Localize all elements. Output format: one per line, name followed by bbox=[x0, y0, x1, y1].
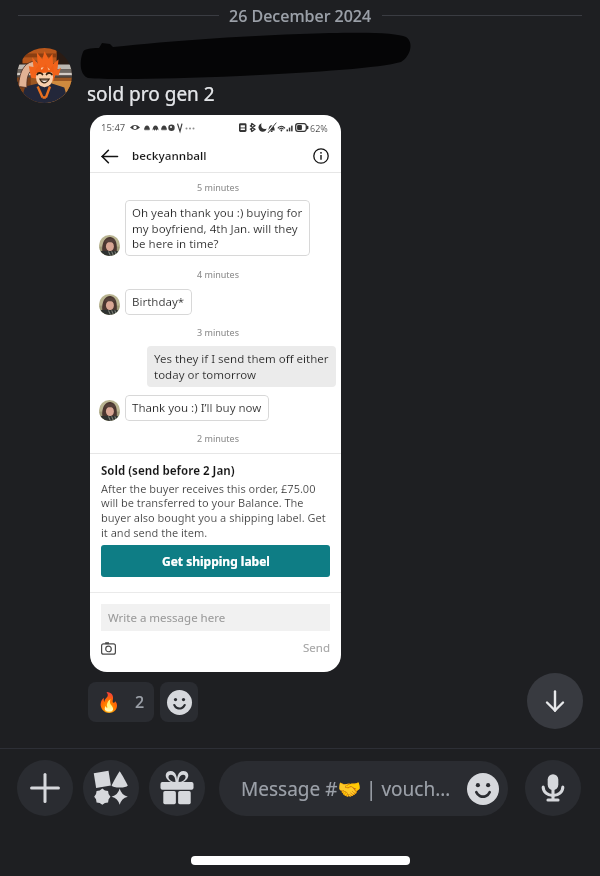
button[interactable]: Voice message bbox=[525, 760, 581, 816]
button[interactable]: User avatar bbox=[17, 48, 72, 103]
staticText: Write a message here bbox=[108, 610, 226, 626]
staticText: Birthday* bbox=[132, 294, 185, 310]
staticText: Get shipping label bbox=[162, 553, 270, 569]
staticText: Thank you :) I’ll buy now bbox=[132, 400, 262, 416]
staticText: 15:47 bbox=[101, 121, 126, 134]
staticText: After the buyer receives this order, £75… bbox=[101, 481, 326, 541]
button[interactable]: Add attachment bbox=[17, 760, 73, 816]
staticText: 4 minutes bbox=[197, 268, 239, 280]
staticText: Message #🤝 | vouch… bbox=[241, 776, 451, 802]
staticText: 3 minutes bbox=[197, 326, 239, 338]
staticText: beckyannball bbox=[132, 148, 207, 164]
button[interactable]: Info bbox=[313, 148, 329, 164]
staticText: Send bbox=[303, 640, 330, 656]
staticText: 26 December 2024 bbox=[229, 5, 372, 27]
staticText: Sold (send before 2 Jan) bbox=[101, 463, 235, 479]
button[interactable]: Message #🤝 | vouch… bbox=[219, 761, 508, 816]
button[interactable]: Back bbox=[101, 148, 118, 165]
staticText: 2 bbox=[135, 691, 145, 713]
staticText: Oh yeah thank you :) buying for my boyfr… bbox=[132, 205, 303, 251]
staticText: 2 minutes bbox=[197, 432, 239, 444]
staticText: Yes they if I send them off either today… bbox=[154, 351, 329, 382]
staticText: 5 minutes bbox=[197, 181, 239, 193]
button[interactable]: Gift bbox=[149, 760, 205, 816]
button[interactable]: Camera bbox=[101, 641, 116, 656]
staticText: 62% bbox=[310, 122, 328, 134]
button[interactable]: Jump to present bbox=[527, 673, 583, 729]
button[interactable]: Add reaction bbox=[160, 682, 198, 722]
staticText: 🔥 bbox=[97, 691, 121, 713]
button[interactable]: 🔥 bbox=[88, 682, 154, 722]
staticText: sold pro gen 2 bbox=[87, 81, 215, 107]
button[interactable]: Stickers bbox=[83, 760, 139, 816]
button[interactable]: Get shipping label bbox=[101, 545, 330, 577]
